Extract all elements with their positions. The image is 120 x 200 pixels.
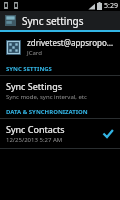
staticText: JCard — [27, 49, 42, 57]
staticText: Sync Settings — [6, 80, 62, 92]
staticText: 12/25/2013 5:27 AM — [6, 136, 63, 144]
button[interactable]: App icon — [0, 11, 120, 30]
staticText: zdrivetest@appsropos.com — [27, 37, 114, 48]
staticText: Sync mode, sync interval, etc — [6, 93, 87, 101]
staticText: Sync settings — [22, 14, 84, 28]
other: Sync Contacts checkbox — [102, 128, 114, 140]
button[interactable]: Sync Contacts — [0, 119, 120, 148]
button[interactable]: zdrivetest@appsropos.com — [0, 32, 120, 62]
button[interactable]: Sync Settings — [0, 76, 120, 105]
staticText: Sync Contacts — [6, 123, 65, 135]
staticText: SYNC SETTINGS — [6, 65, 52, 73]
staticText: DATA & SYNCHRONIZATION — [6, 108, 88, 116]
other: App icon — [5, 15, 16, 26]
staticText: 5:29 — [104, 1, 118, 11]
